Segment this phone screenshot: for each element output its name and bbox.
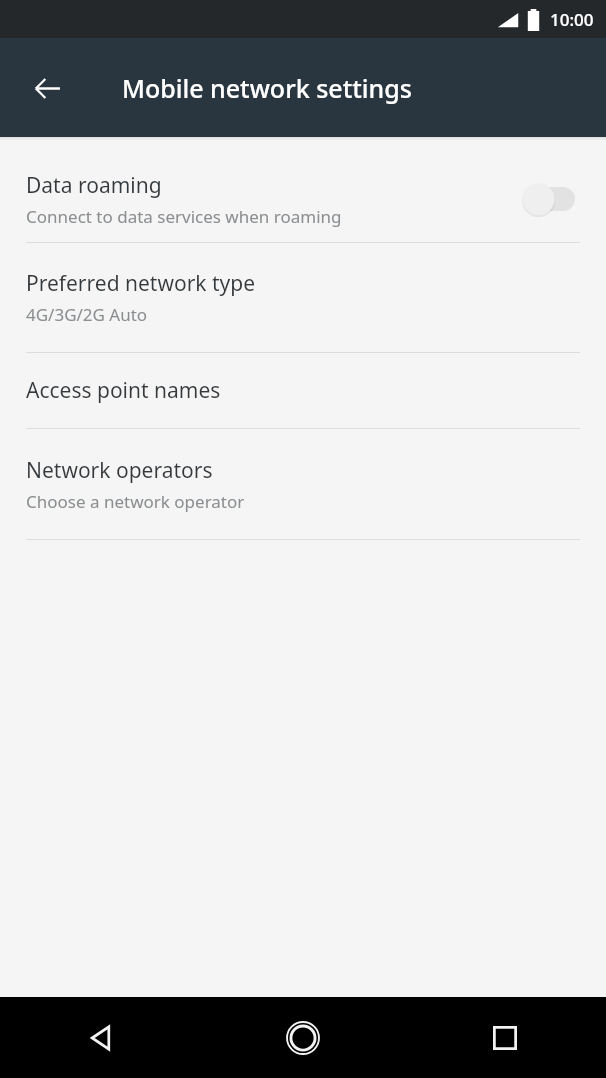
button[interactable]: Navigate up: [17, 58, 77, 118]
staticText: Connect to data services when roaming: [26, 205, 342, 228]
staticText: Mobile network settings: [122, 71, 412, 105]
button[interactable]: Data roaming toggle: [518, 182, 580, 216]
staticText: Preferred network type: [26, 269, 256, 298]
button[interactable]: Data roaming: [0, 156, 606, 242]
button[interactable]: Access point names: [0, 353, 606, 428]
staticText: Data roaming: [26, 171, 162, 200]
staticText: Access point names: [26, 376, 221, 405]
staticText: 10:00: [550, 8, 594, 31]
button[interactable]: Recent apps: [404, 997, 606, 1078]
staticText: Choose a network operator: [26, 490, 245, 513]
button[interactable]: Preferred network type: [0, 243, 606, 352]
button[interactable]: Back: [0, 997, 202, 1078]
button[interactable]: Network operators: [0, 429, 606, 539]
staticText: 4G/3G/2G Auto: [26, 303, 148, 326]
staticText: Network operators: [26, 456, 213, 485]
button[interactable]: Home: [202, 997, 404, 1078]
